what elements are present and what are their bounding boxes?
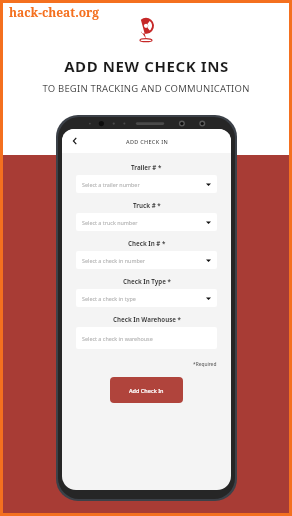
staticText: Truck # *: [133, 201, 161, 209]
button[interactable]: Add Check In: [110, 377, 183, 403]
staticText: Select a check in type: [82, 295, 206, 302]
staticText: Select a check in number: [82, 257, 206, 264]
staticText: TO BEGIN TRACKING AND COMMUNICATION: [42, 82, 250, 95]
staticText: hack-cheat.org: [9, 4, 100, 20]
staticText: Add Check In: [129, 387, 164, 394]
button[interactable]: Back: [62, 129, 88, 153]
button[interactable]: Select a truck number: [76, 213, 217, 231]
staticText: Check In Type *: [123, 277, 171, 285]
button[interactable]: Select a check in type: [76, 289, 217, 307]
staticText: Check In # *: [128, 239, 166, 247]
button[interactable]: Select a check in warehouse: [76, 327, 217, 349]
staticText: ADD CHECK IN: [126, 138, 168, 145]
staticText: Check In Warehouse *: [113, 315, 181, 323]
staticText: Select a check in warehouse: [82, 335, 211, 342]
button[interactable]: Select a check in number: [76, 251, 217, 269]
staticText: *Required: [193, 361, 217, 368]
staticText: Select a trailer number: [82, 181, 206, 188]
staticText: Trailer # *: [131, 163, 162, 171]
staticText: ADD NEW CHECK INS: [64, 56, 229, 76]
staticText: Select a truck number: [82, 219, 206, 226]
button[interactable]: Select a trailer number: [76, 175, 217, 193]
